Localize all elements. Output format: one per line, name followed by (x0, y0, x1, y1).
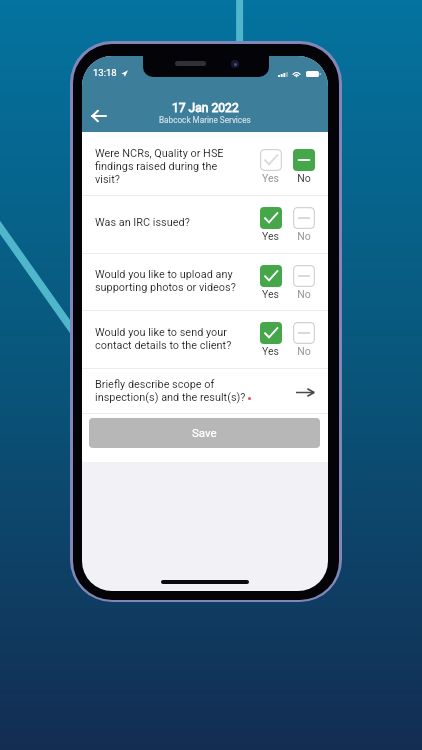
button[interactable]: Would you like to send your contact deta… (82, 311, 328, 368)
staticText: inspection(s) and the result(s)? (95, 391, 246, 404)
staticText: No (297, 172, 311, 184)
staticText: Would you like to send your contact deta… (95, 326, 259, 352)
staticText: No (297, 230, 311, 242)
button[interactable]: No (292, 207, 315, 242)
staticText: Yes (262, 230, 279, 242)
staticText: 13:18 (93, 67, 117, 78)
button[interactable]: Back (82, 100, 114, 132)
staticText: Briefly describe scope of (95, 378, 215, 391)
button[interactable]: No (292, 322, 315, 357)
button[interactable]: No (292, 265, 315, 300)
button[interactable]: Save (89, 418, 320, 448)
staticText: Save (192, 426, 217, 439)
button[interactable]: Was an IRC issued? (82, 196, 328, 253)
staticText: No (297, 288, 311, 300)
button[interactable]: Yes (259, 207, 282, 242)
button[interactable]: Briefly describe scope of (82, 369, 328, 413)
button[interactable]: Yes (259, 149, 282, 184)
staticText: Yes (262, 172, 279, 184)
button[interactable]: Were NCRs, Quality or HSE findings raise… (82, 132, 328, 195)
staticText: 17 Jan 2022 (172, 101, 239, 115)
button[interactable]: Yes (259, 322, 282, 357)
staticText: Was an IRC issued? (95, 216, 259, 229)
button[interactable]: Yes (259, 265, 282, 300)
staticText: Babcock Marine Services (159, 115, 251, 125)
staticText: Yes (262, 288, 279, 300)
staticText: No (297, 345, 311, 357)
button[interactable]: No (292, 149, 315, 184)
button[interactable]: Would you like to upload any supporting … (82, 254, 328, 310)
other: Open (296, 387, 315, 398)
staticText: Yes (262, 345, 279, 357)
staticText: Were NCRs, Quality or HSE findings raise… (95, 147, 259, 186)
staticText: Would you like to upload any supporting … (95, 268, 259, 294)
